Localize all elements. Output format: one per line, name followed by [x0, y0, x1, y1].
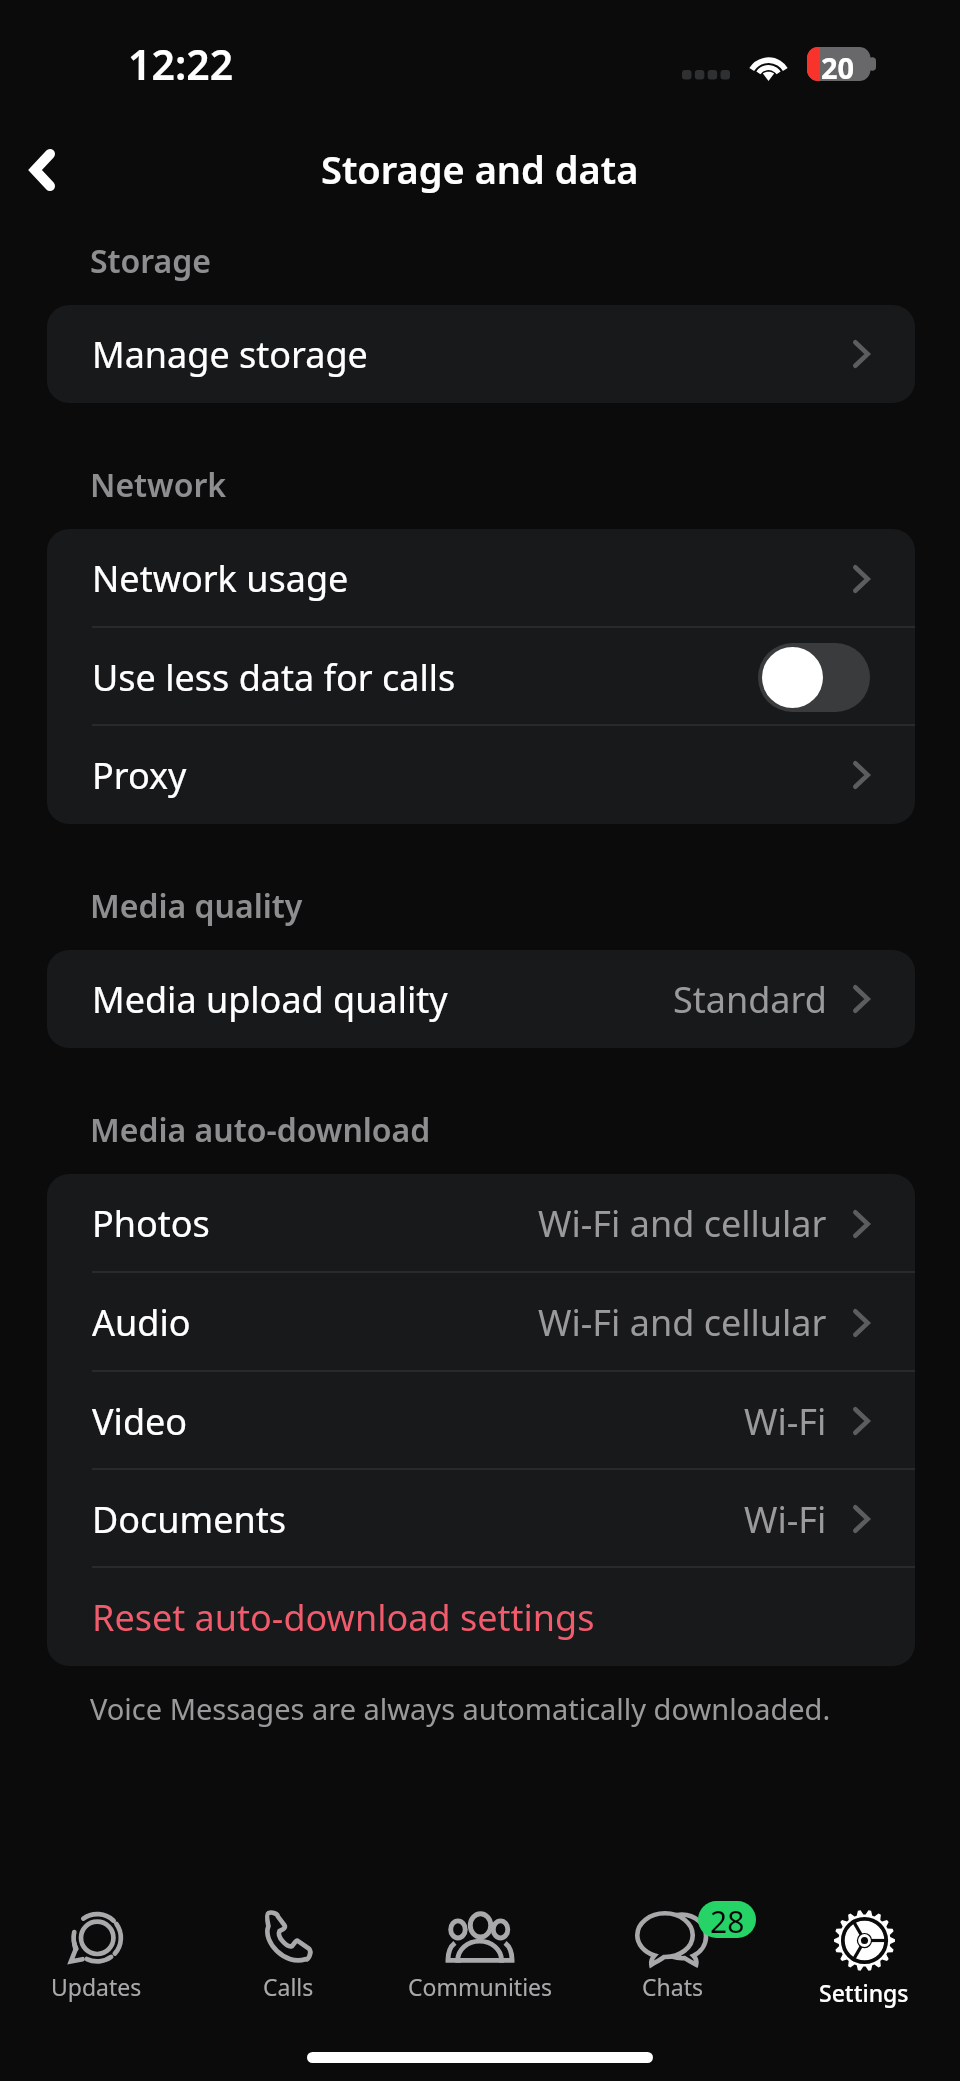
staticText: Media auto-download [90, 1108, 431, 1152]
button[interactable]: Network usage [47, 529, 915, 628]
button[interactable]: Communities [384, 1896, 576, 2002]
button[interactable]: Video [47, 1372, 915, 1470]
staticText: 20 [821, 48, 855, 87]
button[interactable]: Media upload quality [47, 950, 915, 1048]
button[interactable]: Use less data for calls toggle [758, 643, 870, 712]
staticText: Standard [673, 975, 827, 1024]
staticText: 28 [710, 1901, 745, 1938]
staticText: Audio [92, 1298, 191, 1347]
staticText: Network [90, 463, 227, 507]
button[interactable]: Calls [192, 1896, 384, 2002]
button[interactable]: Back [8, 136, 76, 204]
staticText: Storage and data [321, 143, 639, 195]
staticText: Photos [92, 1199, 210, 1248]
staticText: Chats [642, 1971, 703, 2002]
staticText: Wi-Fi [744, 1495, 827, 1544]
button[interactable]: Reset auto-download settings [47, 1568, 915, 1666]
staticText: Storage [90, 239, 212, 283]
staticText: Network usage [92, 554, 349, 603]
button[interactable]: Documents [47, 1470, 915, 1568]
staticText: Calls [263, 1971, 314, 2002]
staticText: Documents [92, 1495, 287, 1544]
button[interactable]: Settings [768, 1896, 960, 2008]
staticText: Settings [819, 1977, 909, 2008]
button[interactable]: Updates [0, 1896, 192, 2002]
button[interactable]: Proxy [47, 726, 915, 824]
staticText: Voice Messages are always automatically … [90, 1689, 831, 1728]
staticText: Wi-Fi and cellular [538, 1298, 827, 1347]
staticText: Communities [408, 1971, 553, 2002]
button[interactable]: Photos [47, 1174, 915, 1273]
staticText: Proxy [92, 751, 187, 800]
staticText: Reset auto-download settings [92, 1593, 595, 1642]
staticText: Wi-Fi [744, 1397, 827, 1446]
button[interactable]: Audio [47, 1273, 915, 1372]
button[interactable]: Manage storage [47, 305, 915, 403]
staticText: Media quality [90, 884, 303, 928]
staticText: 12:22 [128, 36, 234, 92]
staticText: Use less data for calls [92, 653, 456, 702]
button[interactable]: 28 [576, 1896, 768, 2002]
staticText: Updates [51, 1971, 142, 2002]
staticText: Media upload quality [92, 975, 448, 1024]
staticText: Manage storage [92, 330, 368, 379]
staticText: Video [92, 1397, 188, 1446]
staticText: Wi-Fi and cellular [538, 1199, 827, 1248]
button[interactable]: Use less data for calls [47, 628, 915, 726]
